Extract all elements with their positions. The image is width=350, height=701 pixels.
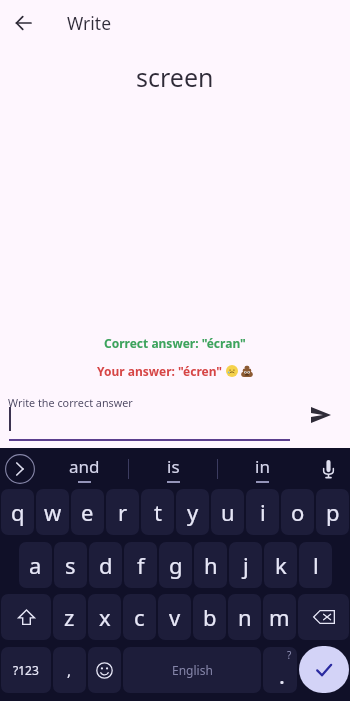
button[interactable]: English [123,647,261,693]
button[interactable]: o [281,489,314,535]
button[interactable]: Emoji [88,647,121,693]
button[interactable]: Enter [299,646,349,693]
staticText: c [134,602,145,632]
staticText: y [187,497,199,527]
staticText: n [238,602,252,632]
button[interactable]: Voice input [306,448,350,490]
button[interactable]: is [129,448,217,490]
staticText: l [313,550,319,580]
button[interactable]: j [229,542,262,588]
button[interactable]: and [40,448,128,490]
staticText: i [260,497,266,527]
button[interactable]: More suggestions [0,448,40,490]
staticText: ? [287,648,292,662]
button[interactable]: r [106,489,139,535]
staticText: . [279,660,285,690]
staticText: r [118,497,128,527]
button[interactable]: n [228,594,261,640]
staticText: , [67,660,72,680]
staticText: in [255,455,270,478]
staticText: p [326,497,340,527]
button[interactable]: k [264,542,297,588]
staticText: m [269,602,290,632]
staticText: is [167,455,180,478]
button[interactable]: Back [0,0,46,46]
staticText: w [44,497,62,527]
button[interactable]: c [123,594,156,640]
staticText: h [204,550,218,580]
button[interactable]: b [193,594,226,640]
staticText: e [81,497,94,527]
button[interactable]: q [1,489,34,535]
button[interactable]: a [19,542,52,588]
button[interactable]: Backspace [298,594,349,640]
button[interactable]: ?123 [1,647,51,693]
staticText: k [275,550,287,580]
button[interactable]: v [158,594,191,640]
button[interactable]: s [54,542,87,588]
staticText: j [243,550,249,580]
button[interactable]: i [246,489,279,535]
staticText: v [169,602,181,632]
button[interactable]: p [316,489,349,535]
staticText: x [99,602,111,632]
button[interactable]: h [194,542,227,588]
staticText: English [172,662,213,678]
staticText: q [11,497,25,527]
button[interactable]: m [263,594,296,640]
button[interactable]: e [71,489,104,535]
staticText: o [291,497,305,527]
button[interactable]: u [211,489,244,535]
staticText: b [203,602,217,632]
button[interactable]: ? [263,647,297,693]
button[interactable]: Send [302,396,340,434]
staticText: screen [136,60,214,94]
staticText: a [29,550,42,580]
staticText: t [154,497,162,527]
button[interactable]: f [124,542,157,588]
button[interactable]: w [36,489,69,535]
button[interactable]: l [299,542,332,588]
button[interactable]: y [176,489,209,535]
staticText: s [65,550,76,580]
button[interactable]: d [89,542,122,588]
staticText: z [64,602,75,632]
staticText: Write the correct answer [8,395,133,410]
staticText: Correct answer: "écran" [104,335,246,351]
button[interactable]: t [141,489,174,535]
button[interactable]: x [88,594,121,640]
staticText: f [137,550,145,580]
button[interactable]: g [159,542,192,588]
button[interactable]: in [218,448,306,490]
staticText: u [221,497,235,527]
button[interactable]: , [53,647,86,693]
staticText: g [169,550,183,580]
staticText: d [99,550,113,580]
staticText: ?123 [13,662,39,678]
staticText: Your answer: "écren" [97,363,223,379]
button[interactable]: z [53,594,86,640]
button[interactable]: Shift [1,594,51,640]
staticText: Write [67,11,112,35]
staticText: and [69,455,100,478]
